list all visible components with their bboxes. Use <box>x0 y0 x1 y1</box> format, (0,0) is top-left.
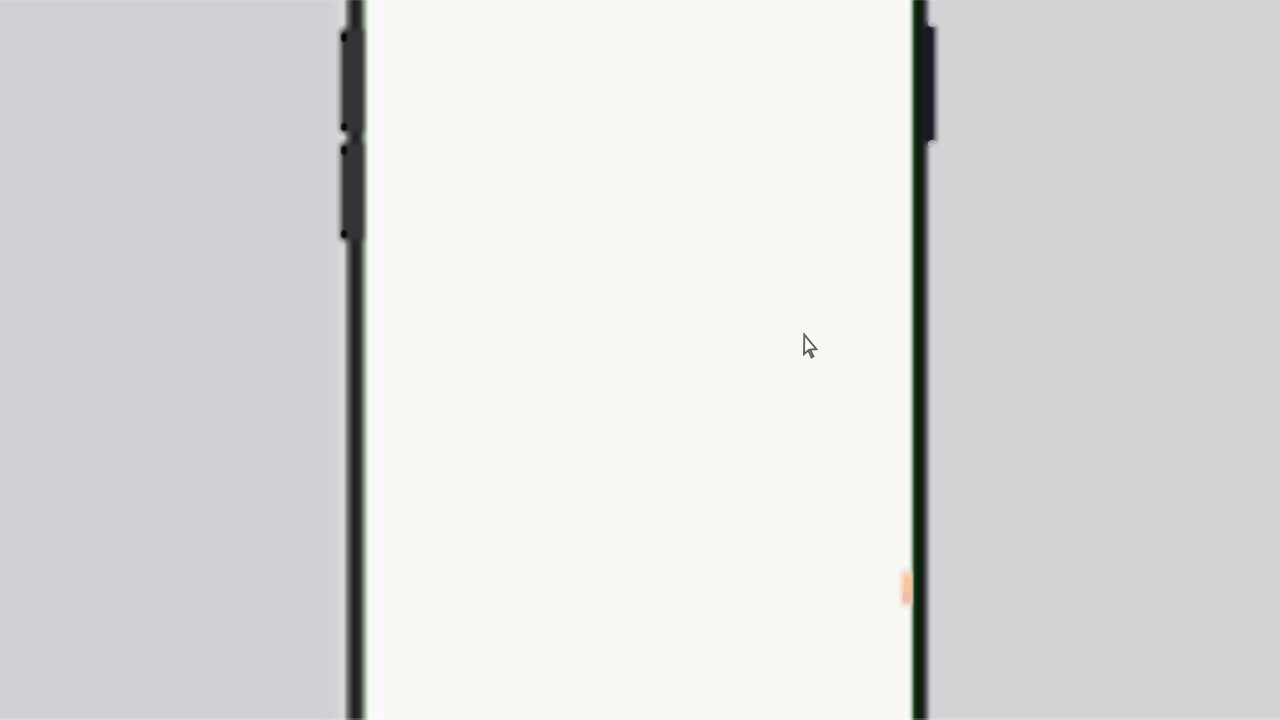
button[interactable]: Side button <box>916 20 940 148</box>
button[interactable]: Volume down <box>336 138 368 245</box>
button[interactable]: Volume up <box>336 24 368 137</box>
